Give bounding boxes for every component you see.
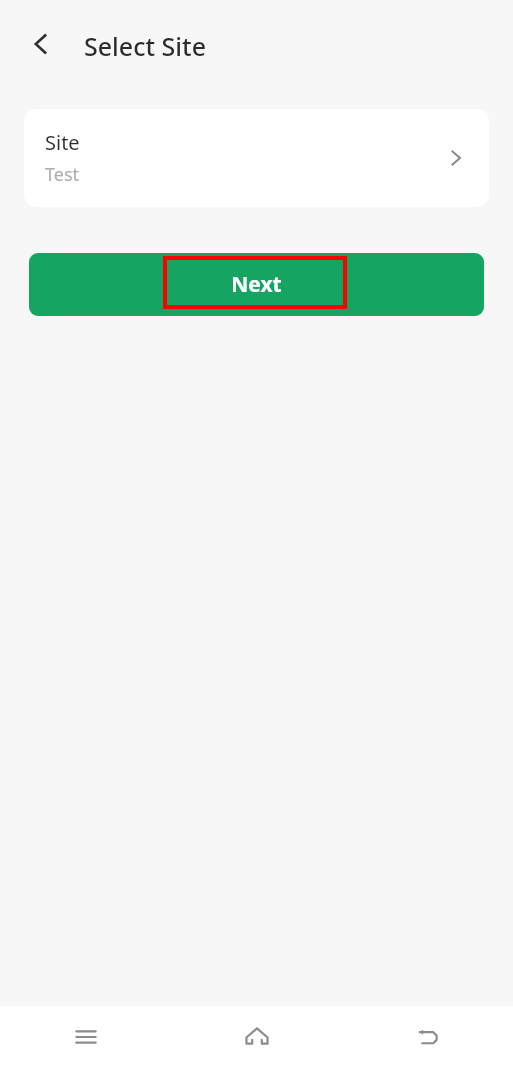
button[interactable]: Back	[342, 1006, 513, 1067]
button[interactable]: Next	[29, 253, 484, 316]
button[interactable]: Recent apps	[0, 1006, 171, 1067]
staticText: Test	[45, 162, 80, 187]
button[interactable]: Home	[171, 1006, 342, 1067]
button[interactable]: Back	[18, 21, 64, 67]
staticText: Site	[45, 129, 80, 156]
button[interactable]: Site	[24, 109, 489, 207]
staticText: Next	[231, 270, 282, 299]
staticText: Select Site	[84, 29, 206, 63]
